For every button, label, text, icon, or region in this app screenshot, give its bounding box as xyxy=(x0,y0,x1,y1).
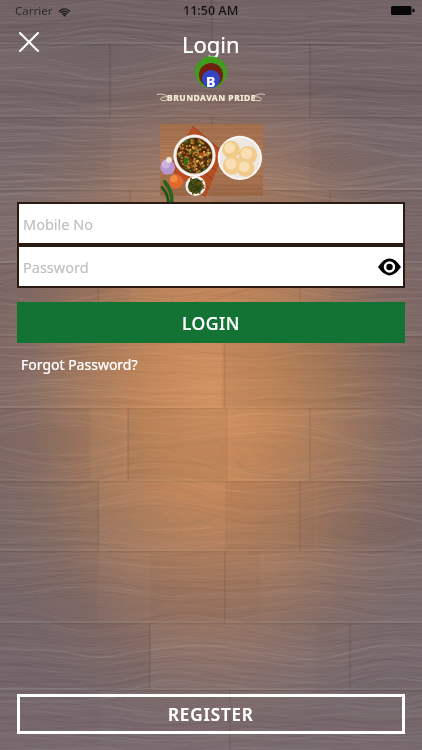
staticText: Carrier xyxy=(15,3,53,19)
button[interactable]: Close xyxy=(13,26,45,58)
staticText: LOGIN xyxy=(182,311,240,335)
staticText: Forgot Password? xyxy=(21,355,138,374)
button[interactable]: REGISTER xyxy=(17,694,405,734)
staticText: Login xyxy=(182,29,240,59)
button[interactable]: Mobile No xyxy=(17,202,405,245)
staticText: Password xyxy=(23,257,89,277)
staticText: REGISTER xyxy=(168,703,254,726)
button[interactable]: Show password xyxy=(376,254,402,280)
staticText: BRUNDAVAN PRIDE xyxy=(167,92,256,104)
button[interactable]: LOGIN xyxy=(17,302,405,343)
staticText: 11:50 AM xyxy=(183,2,239,19)
button[interactable]: Forgot Password? xyxy=(17,351,138,378)
staticText: B xyxy=(206,72,216,91)
button[interactable]: Password xyxy=(17,245,405,288)
staticText: Mobile No xyxy=(23,214,94,234)
